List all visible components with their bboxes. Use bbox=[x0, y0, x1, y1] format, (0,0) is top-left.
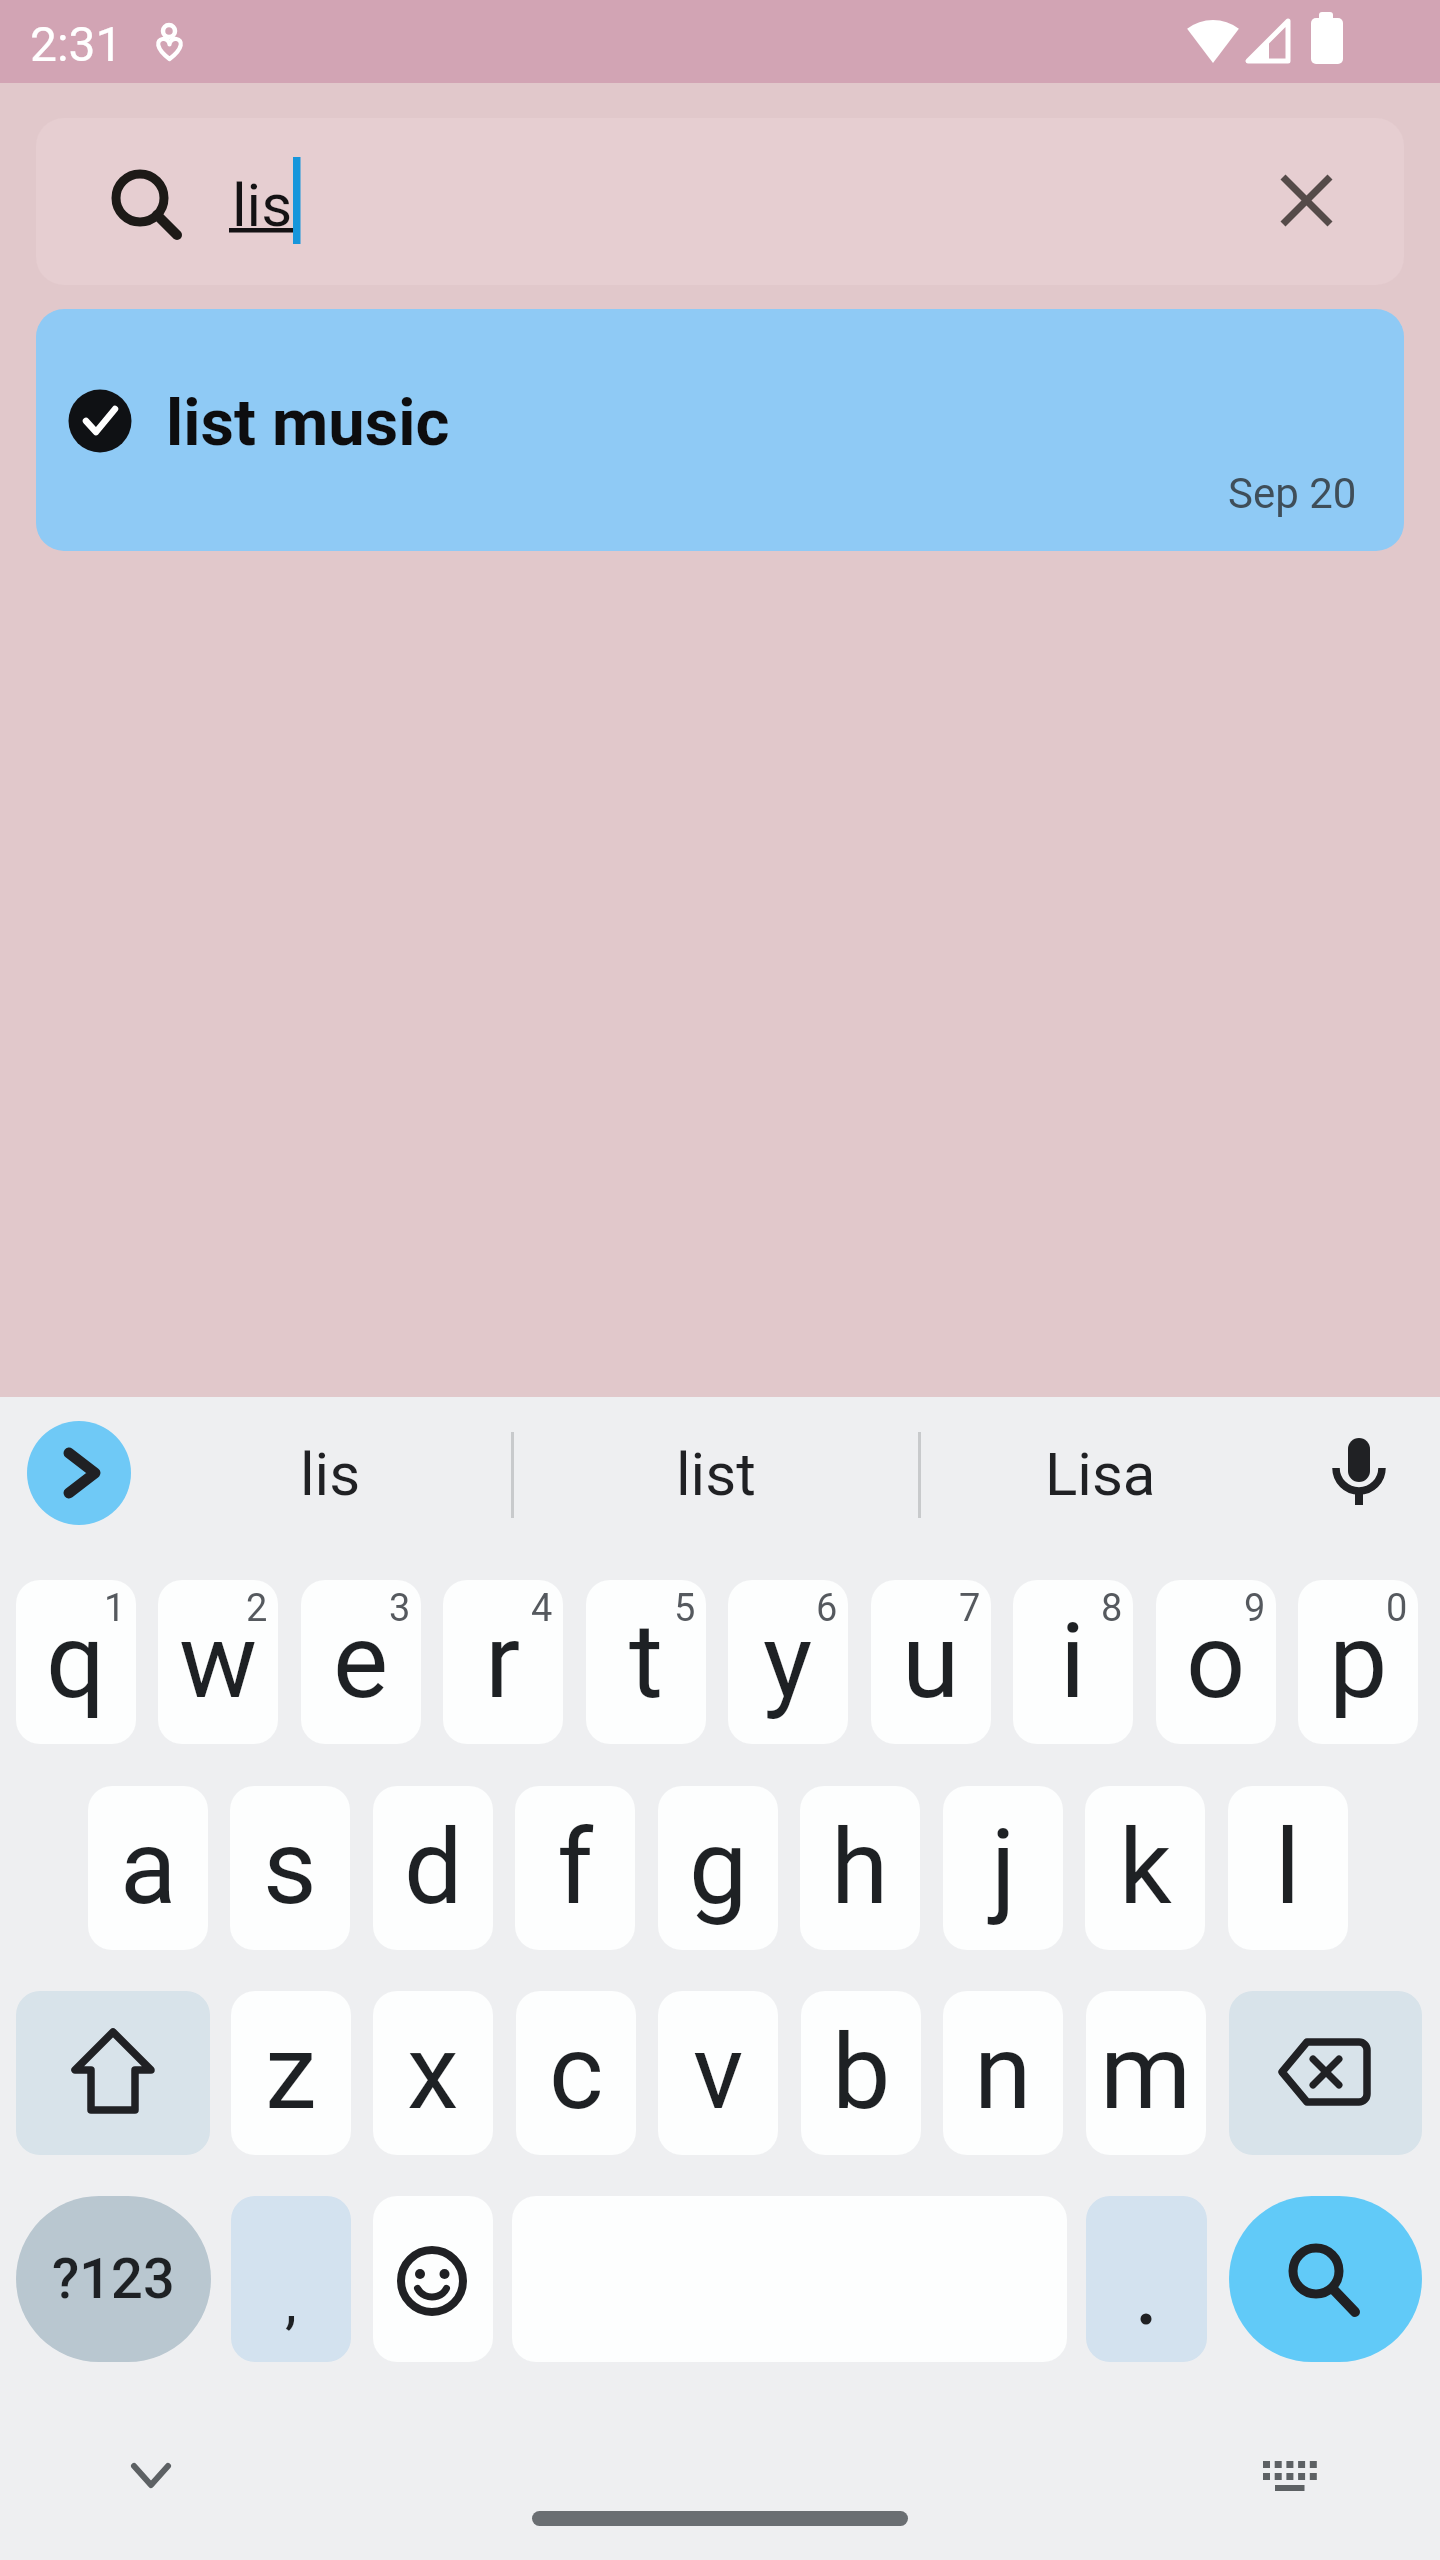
button[interactable]: list bbox=[546, 1420, 886, 1528]
button[interactable]: n bbox=[943, 1991, 1063, 2155]
staticText: 2 bbox=[246, 1586, 268, 1631]
staticText: k bbox=[1119, 1807, 1172, 1929]
button[interactable] bbox=[1229, 1991, 1422, 2155]
button[interactable]: a bbox=[88, 1786, 208, 1950]
staticText: d bbox=[404, 1807, 463, 1929]
staticText: 8 bbox=[1101, 1586, 1123, 1631]
staticText: Sep 20 bbox=[1228, 469, 1357, 518]
staticText: c bbox=[549, 2012, 604, 2134]
staticText: u bbox=[902, 1601, 960, 1723]
staticText: 4 bbox=[531, 1586, 553, 1631]
staticText: o bbox=[1186, 1601, 1246, 1723]
staticText: a bbox=[120, 1807, 177, 1929]
staticText: 1 bbox=[104, 1586, 126, 1631]
button[interactable]: d bbox=[373, 1786, 493, 1950]
staticText: 5 bbox=[674, 1586, 696, 1631]
staticText: 9 bbox=[1244, 1586, 1266, 1631]
button[interactable] bbox=[1229, 2196, 1422, 2362]
staticText: b bbox=[832, 2012, 891, 2134]
button[interactable]: o bbox=[1156, 1580, 1276, 1744]
staticText: lis bbox=[232, 170, 293, 240]
button[interactable] bbox=[16, 1991, 210, 2155]
staticText: , bbox=[285, 2266, 297, 2336]
staticText: n bbox=[974, 2012, 1032, 2134]
button[interactable]: c bbox=[516, 1991, 636, 2155]
button[interactable]: , bbox=[231, 2196, 351, 2362]
staticText: v bbox=[693, 2012, 744, 2134]
button[interactable]: x bbox=[373, 1991, 493, 2155]
staticText: Lisa bbox=[1045, 1439, 1156, 1509]
button[interactable]: v bbox=[658, 1991, 778, 2155]
button[interactable]: m bbox=[1086, 1991, 1206, 2155]
staticText: h bbox=[831, 1807, 889, 1929]
button[interactable]: t bbox=[586, 1580, 706, 1744]
staticText: p bbox=[1329, 1601, 1388, 1723]
staticText: 7 bbox=[959, 1586, 981, 1631]
button[interactable]: ?123 bbox=[16, 2196, 211, 2362]
button[interactable]: e bbox=[301, 1580, 421, 1744]
button[interactable]: r bbox=[443, 1580, 563, 1744]
button[interactable] bbox=[1310, 1420, 1410, 1528]
staticText: w bbox=[179, 1601, 258, 1723]
staticText: 3 bbox=[389, 1586, 411, 1631]
staticText: q bbox=[46, 1601, 106, 1723]
staticText: s bbox=[263, 1807, 317, 1929]
staticText: 2:31 bbox=[30, 16, 123, 72]
staticText: list bbox=[676, 1439, 756, 1509]
button[interactable] bbox=[373, 2196, 493, 2362]
button[interactable]: q bbox=[16, 1580, 136, 1744]
staticText: e bbox=[333, 1601, 389, 1723]
staticText: g bbox=[689, 1807, 748, 1929]
staticText: lis bbox=[300, 1439, 361, 1509]
staticText: z bbox=[265, 2012, 317, 2134]
button[interactable]: k bbox=[1085, 1786, 1205, 1950]
staticText: list music bbox=[166, 385, 450, 461]
staticText: r bbox=[485, 1601, 521, 1723]
staticText: f bbox=[557, 1807, 594, 1929]
button[interactable]: Lisa bbox=[930, 1420, 1270, 1528]
button[interactable]: s bbox=[230, 1786, 350, 1950]
button[interactable]: z bbox=[231, 1991, 351, 2155]
button[interactable] bbox=[1086, 2196, 1207, 2362]
staticText: x bbox=[407, 2012, 459, 2134]
button[interactable]: j bbox=[943, 1786, 1063, 1950]
staticText: j bbox=[991, 1807, 1016, 1929]
staticText: i bbox=[1060, 1601, 1086, 1723]
button[interactable]: p bbox=[1298, 1580, 1418, 1744]
staticText: 6 bbox=[816, 1586, 838, 1631]
button[interactable]: i bbox=[1013, 1580, 1133, 1744]
staticText: y bbox=[763, 1601, 813, 1723]
button[interactable]: b bbox=[801, 1991, 921, 2155]
staticText: l bbox=[1275, 1807, 1301, 1929]
staticText: m bbox=[1100, 2012, 1192, 2134]
button[interactable]: w bbox=[158, 1580, 278, 1744]
button[interactable]: f bbox=[515, 1786, 635, 1950]
staticText: t bbox=[629, 1601, 664, 1723]
button[interactable]: g bbox=[658, 1786, 778, 1950]
button[interactable]: lis bbox=[160, 1420, 500, 1528]
button[interactable]: y bbox=[728, 1580, 848, 1744]
staticText: ?123 bbox=[52, 2246, 175, 2312]
button[interactable] bbox=[36, 309, 1404, 551]
button[interactable] bbox=[36, 118, 1404, 285]
button[interactable]: l bbox=[1228, 1786, 1348, 1950]
button[interactable]: u bbox=[871, 1580, 991, 1744]
button[interactable]: h bbox=[800, 1786, 920, 1950]
staticText: 0 bbox=[1386, 1586, 1408, 1631]
button[interactable] bbox=[27, 1421, 131, 1525]
